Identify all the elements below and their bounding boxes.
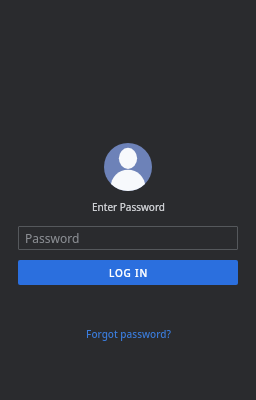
button[interactable]: Password bbox=[18, 226, 238, 250]
staticText: Password bbox=[25, 230, 80, 246]
other: User avatar bbox=[104, 143, 152, 191]
staticText: Enter Password bbox=[92, 200, 165, 214]
button[interactable]: Forgot password? bbox=[78, 323, 179, 345]
staticText: Forgot password? bbox=[86, 327, 171, 341]
button[interactable]: LOG IN bbox=[18, 260, 238, 285]
staticText: LOG IN bbox=[109, 266, 148, 280]
